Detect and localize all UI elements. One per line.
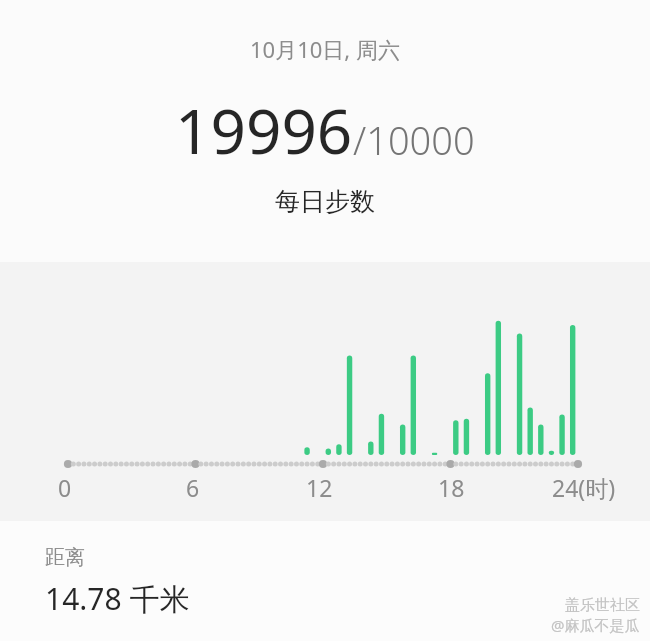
staticText: 24(时) <box>552 472 616 503</box>
staticText: 盖乐世社区 <box>565 596 640 615</box>
staticText: 10月10日, 周六 <box>250 34 400 64</box>
staticText: 距离 <box>45 545 85 570</box>
staticText: 19996 <box>175 88 353 172</box>
staticText: 18 <box>438 472 465 503</box>
button[interactable]: 距离 <box>45 545 190 619</box>
staticText: /10000 <box>353 114 475 166</box>
staticText: 14.78 千米 <box>45 578 190 619</box>
staticText: 12 <box>306 472 333 503</box>
staticText: 6 <box>186 472 200 503</box>
staticText: @麻瓜不是瓜 <box>551 615 640 635</box>
staticText: 每日步数 <box>275 186 375 217</box>
button[interactable]: 10月10日, 周六 <box>0 0 650 262</box>
button[interactable]: 每日步数图表 Hourly step chart <box>0 262 650 521</box>
staticText: 0 <box>58 472 72 503</box>
